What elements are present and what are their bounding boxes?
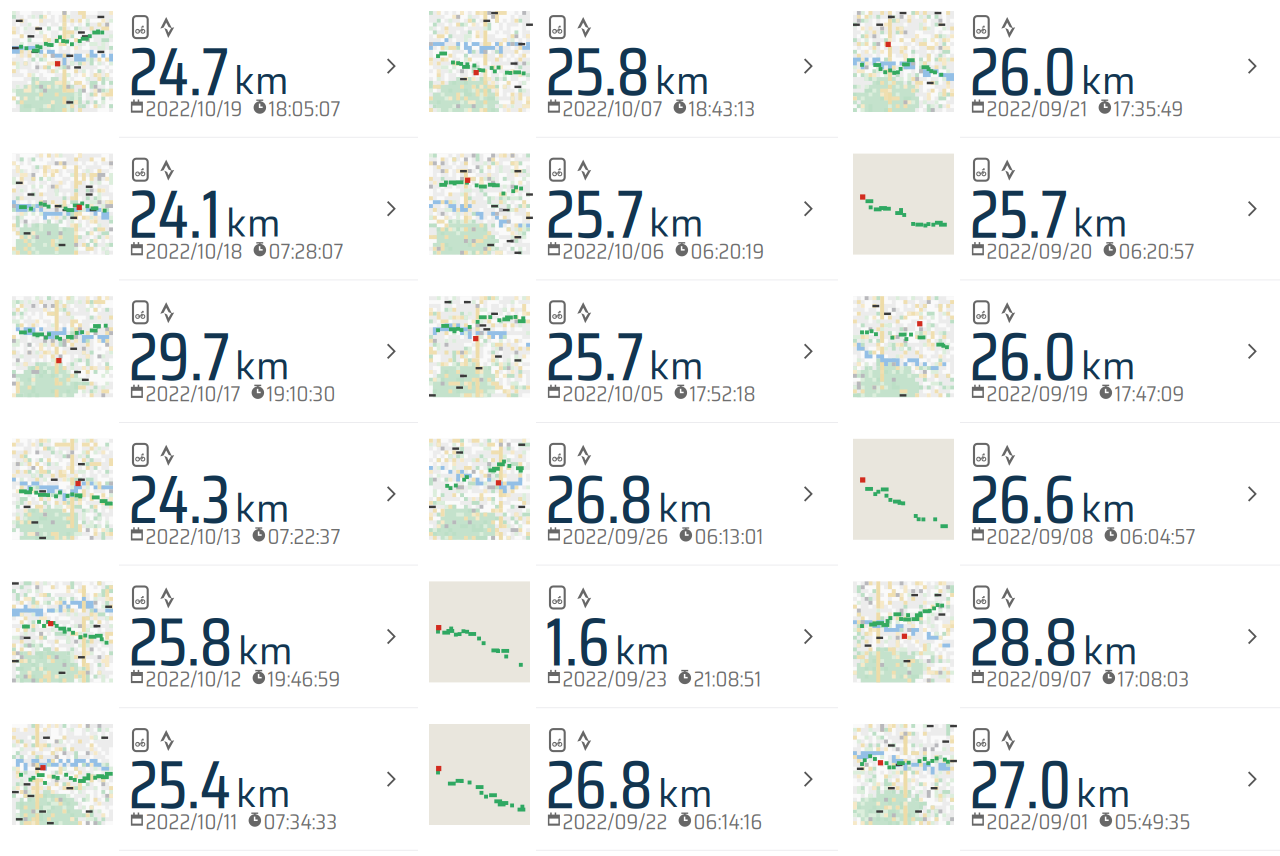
staticText: 26.8	[546, 732, 653, 837]
button[interactable]: 25.7	[838, 143, 1280, 285]
staticText: km	[1081, 50, 1136, 111]
staticText: 06:13:01	[695, 520, 764, 553]
button[interactable]: 25.7	[418, 285, 838, 428]
staticText: 17:08:03	[1118, 663, 1190, 696]
staticText: 2022/10/12	[146, 663, 242, 696]
staticText: 18:43:13	[689, 93, 756, 125]
staticText: 2022/10/11	[146, 806, 238, 838]
staticText: km	[655, 50, 710, 111]
staticText: 25.4	[129, 732, 231, 837]
staticText: 27.0	[970, 732, 1071, 837]
staticText: km	[658, 763, 713, 824]
staticText: 25.8	[546, 19, 650, 124]
staticText: 18:05:07	[269, 93, 341, 125]
staticText: 1.6	[546, 590, 610, 695]
button[interactable]: 25.8	[0, 570, 418, 713]
staticText: 29.7	[129, 305, 230, 410]
button[interactable]: 1.6	[418, 570, 838, 713]
staticText: 17:47:09	[1115, 378, 1185, 410]
staticText: 07:34:33	[264, 806, 338, 838]
staticText: km	[1076, 763, 1131, 824]
staticText: 24.3	[129, 447, 230, 552]
staticText: 2022/10/18	[146, 235, 243, 268]
staticText: 17:52:18	[690, 378, 756, 410]
button[interactable]: 26.8	[418, 428, 838, 570]
button[interactable]: 29.7	[0, 285, 418, 428]
staticText: 26.8	[546, 447, 653, 552]
button[interactable]: 26.8	[418, 713, 838, 856]
staticText: 25.7	[546, 162, 644, 267]
staticText: 21:08:51	[694, 663, 762, 696]
staticText: 24.1	[129, 162, 221, 267]
staticText: km	[615, 620, 670, 681]
staticText: 2022/09/07	[987, 663, 1092, 696]
staticText: 28.8	[970, 590, 1078, 695]
staticText: km	[234, 50, 289, 111]
staticText: km	[1073, 193, 1128, 254]
staticText: 06:20:57	[1119, 235, 1195, 268]
staticText: 2022/10/05	[563, 378, 664, 410]
button[interactable]: 24.3	[0, 428, 418, 570]
staticText: 2022/10/19	[146, 93, 243, 125]
staticText: km	[649, 335, 704, 396]
staticText: 17:35:49	[1114, 93, 1184, 125]
staticText: km	[1083, 620, 1138, 681]
staticText: 26.0	[970, 19, 1076, 124]
staticText: 06:20:19	[691, 235, 765, 268]
staticText: km	[236, 763, 291, 824]
button[interactable]: 25.4	[0, 713, 418, 856]
staticText: 19:46:59	[268, 663, 341, 696]
staticText: 05:49:35	[1115, 806, 1191, 838]
staticText: km	[1081, 335, 1136, 396]
staticText: 2022/09/26	[563, 520, 669, 553]
staticText: 25.7	[970, 162, 1068, 267]
staticText: 19:10:30	[267, 378, 336, 410]
staticText: 2022/09/19	[987, 378, 1089, 410]
staticText: km	[235, 335, 290, 396]
staticText: 2022/09/23	[563, 663, 668, 696]
staticText: 26.0	[970, 305, 1076, 410]
button[interactable]: 26.6	[838, 428, 1280, 570]
staticText: 24.7	[129, 19, 229, 124]
staticText: 2022/10/13	[146, 520, 242, 553]
button[interactable]: 27.0	[838, 713, 1280, 856]
staticText: 06:04:57	[1120, 520, 1196, 553]
staticText: 2022/09/21	[987, 93, 1088, 125]
button[interactable]: 28.8	[838, 570, 1280, 713]
staticText: 2022/09/22	[563, 806, 668, 838]
staticText: 2022/10/06	[563, 235, 665, 268]
staticText: km	[226, 193, 281, 254]
button[interactable]: 24.7	[0, 0, 418, 143]
staticText: 07:22:37	[268, 520, 341, 553]
staticText: 07:28:07	[269, 235, 344, 268]
button[interactable]: 26.0	[838, 0, 1280, 143]
staticText: 2022/09/20	[987, 235, 1093, 268]
staticText: km	[238, 620, 293, 681]
button[interactable]: 25.8	[418, 0, 838, 143]
staticText: 26.6	[970, 447, 1076, 552]
button[interactable]: 26.0	[838, 285, 1280, 428]
staticText: 2022/10/07	[563, 93, 663, 125]
button[interactable]: 24.1	[0, 143, 418, 285]
staticText: 25.8	[129, 590, 233, 695]
button[interactable]: 25.7	[418, 143, 838, 285]
staticText: km	[1081, 478, 1136, 539]
staticText: 25.7	[546, 305, 644, 410]
staticText: 2022/09/01	[987, 806, 1089, 838]
staticText: 2022/09/08	[987, 520, 1094, 553]
staticText: km	[649, 193, 704, 254]
staticText: km	[235, 478, 290, 539]
staticText: 06:14:16	[694, 806, 763, 838]
staticText: 2022/10/17	[146, 378, 241, 410]
staticText: km	[658, 478, 713, 539]
